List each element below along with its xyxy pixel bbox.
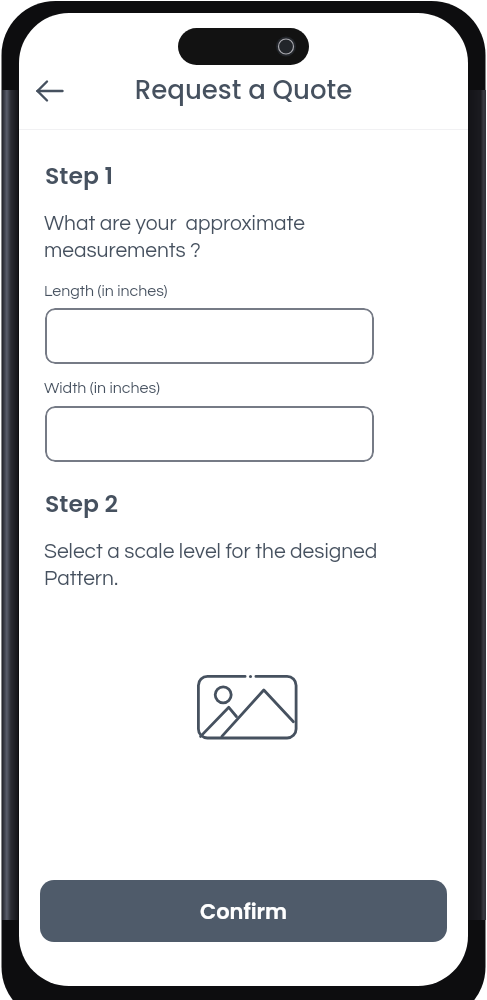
button[interactable]: Back bbox=[26, 67, 74, 115]
button[interactable] bbox=[45, 308, 374, 364]
staticText: Confirm bbox=[200, 897, 287, 926]
staticText: Select a scale level for the designed bbox=[44, 541, 378, 563]
staticText: Step 2 bbox=[45, 487, 118, 520]
staticText: Request a Quote bbox=[19, 72, 468, 108]
staticText: Length (in inches) bbox=[44, 283, 168, 299]
button[interactable]: Confirm bbox=[40, 880, 447, 942]
button[interactable] bbox=[45, 406, 374, 462]
staticText: Width (in inches) bbox=[44, 380, 160, 396]
staticText: Step 1 bbox=[45, 159, 113, 192]
staticText: What are your approximate bbox=[44, 213, 305, 235]
staticText: Pattern. bbox=[44, 568, 119, 590]
staticText: measurements ? bbox=[44, 240, 201, 262]
